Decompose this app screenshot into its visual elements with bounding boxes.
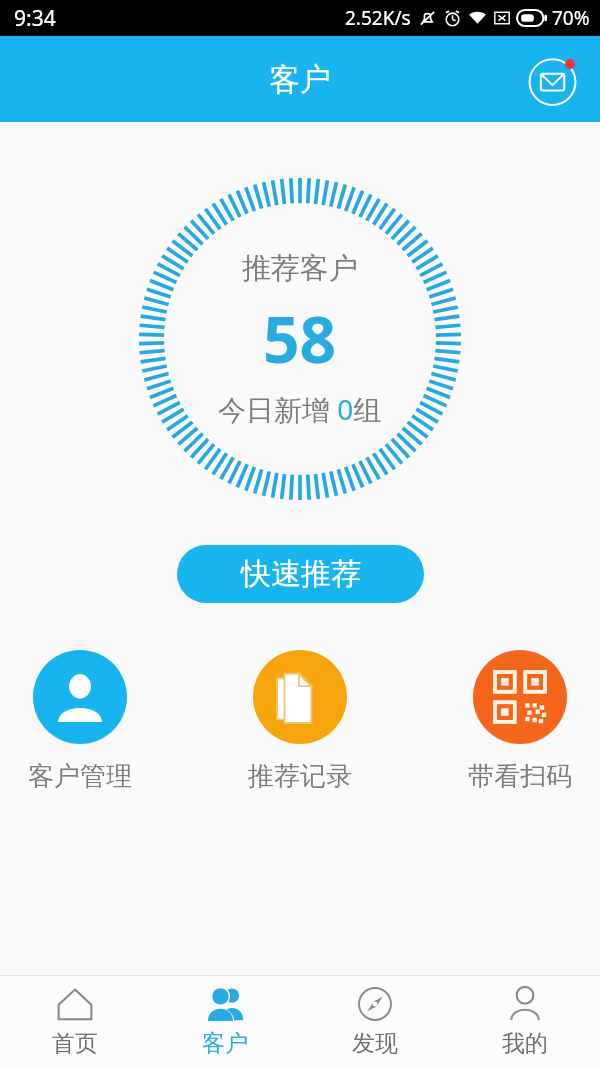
staticText: 2.52K/s [345, 5, 411, 31]
staticText: 客户 [202, 1029, 248, 1058]
button[interactable]: 首页 [0, 976, 150, 1067]
staticText: 首页 [52, 1029, 98, 1058]
button[interactable]: 客户 [150, 976, 300, 1067]
button[interactable]: Messages [524, 48, 586, 110]
staticText: 客户 [269, 60, 331, 99]
staticText: 发现 [352, 1029, 398, 1058]
staticText: 带看扫码 [468, 760, 572, 793]
button[interactable]: 推荐记录 [248, 650, 352, 793]
staticText: 推荐记录 [248, 760, 352, 793]
staticText: 58 [263, 295, 337, 382]
staticText: 9:34 [14, 4, 56, 33]
staticText: 70% [552, 5, 590, 31]
staticText: 快速推荐 [241, 555, 361, 593]
button[interactable]: 我的 [450, 976, 600, 1067]
staticText: 今日新增 0组 [218, 390, 382, 428]
button[interactable]: 带看扫码 [468, 650, 572, 793]
button[interactable]: 客户管理 [28, 650, 132, 793]
button[interactable]: 发现 [300, 976, 450, 1067]
staticText: 我的 [502, 1029, 548, 1058]
button[interactable]: 快速推荐 [177, 545, 424, 603]
staticText: 客户管理 [28, 760, 132, 793]
staticText: 推荐客户 [242, 250, 358, 287]
